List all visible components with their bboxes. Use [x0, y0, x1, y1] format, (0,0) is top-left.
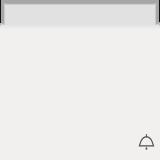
button[interactable]: Notifications: [134, 130, 158, 154]
